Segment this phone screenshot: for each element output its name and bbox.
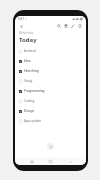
staticText: Idea	[24, 59, 31, 63]
staticText: App update	[24, 119, 41, 123]
button[interactable]: App update	[15, 116, 86, 126]
staticText: Sketching	[24, 69, 39, 73]
staticText: Study	[24, 79, 33, 83]
button[interactable]: Back	[67, 158, 74, 165]
button[interactable]: Study	[15, 76, 86, 86]
button[interactable]: Sketching	[15, 66, 86, 76]
staticText: Today	[19, 36, 37, 44]
button[interactable]: Home	[47, 158, 54, 165]
button[interactable]: Edit	[69, 22, 76, 29]
staticText: Android	[24, 49, 36, 53]
button[interactable]: Search	[55, 22, 62, 29]
staticText: Programming	[24, 89, 45, 93]
staticText: 9:41	[18, 17, 24, 21]
button[interactable]: Programming	[15, 86, 86, 96]
staticText: Coding	[24, 99, 35, 103]
button[interactable]: Idea	[15, 56, 86, 66]
staticText: Design	[24, 109, 35, 113]
button[interactable]: Add task	[47, 143, 54, 150]
button[interactable]: Android	[15, 46, 86, 56]
button[interactable]: Recents	[28, 158, 35, 165]
button[interactable]: Back	[18, 23, 24, 29]
button[interactable]: More options	[76, 22, 83, 29]
button[interactable]: Coding	[15, 96, 86, 106]
staticText: Wednesday	[19, 31, 34, 35]
button[interactable]: Delete	[62, 22, 69, 29]
button[interactable]: Design	[15, 106, 86, 116]
